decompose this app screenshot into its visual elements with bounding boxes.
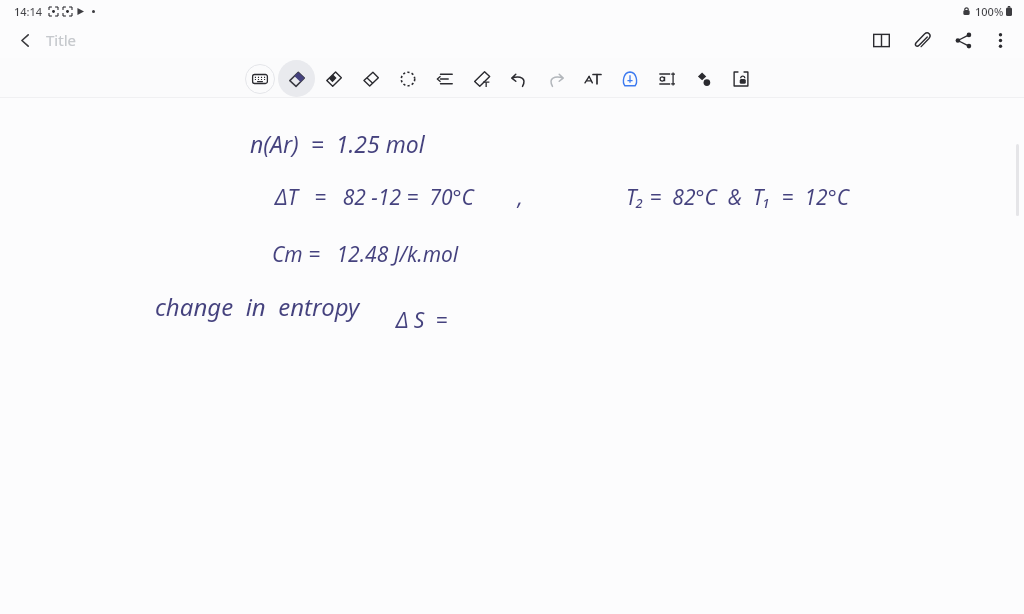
staticText: 100% (975, 4, 1004, 19)
button[interactable]: Back (8, 23, 42, 57)
staticText: change in entropy (155, 290, 360, 323)
button[interactable]: Pen (278, 60, 315, 97)
button[interactable]: Lasso select (389, 60, 426, 97)
staticText: 14:14 (14, 4, 43, 19)
button[interactable]: Convert handwriting (463, 60, 500, 97)
staticText: Δ S = (396, 306, 448, 335)
button[interactable]: Keyboard (241, 60, 278, 97)
button[interactable]: Align (426, 60, 463, 97)
button[interactable]: Book view (865, 24, 897, 56)
button[interactable]: Redo (537, 60, 574, 97)
staticText: ΔT = 82 -12 = 70°C , (275, 183, 523, 212)
staticText: T₂ = 82°C & T₁ = 12°C (626, 183, 849, 212)
button[interactable]: Undo (500, 60, 537, 97)
button[interactable]: Shapes (685, 60, 722, 97)
button[interactable]: AI assist (611, 60, 648, 97)
button[interactable]: More options (984, 24, 1016, 56)
staticText: n(Ar) = 1.25 mol (250, 128, 425, 159)
button[interactable]: Highlighter (315, 60, 352, 97)
button[interactable]: Text options (648, 60, 685, 97)
button[interactable]: Eraser (352, 60, 389, 97)
button[interactable]: Attach (906, 24, 938, 56)
staticText: Title (46, 30, 76, 50)
staticText: Cm = 12.48 J/k.mol (272, 240, 459, 269)
button[interactable]: Lock (722, 60, 759, 97)
button[interactable]: Text style (574, 60, 611, 97)
button[interactable]: Share (947, 24, 979, 56)
